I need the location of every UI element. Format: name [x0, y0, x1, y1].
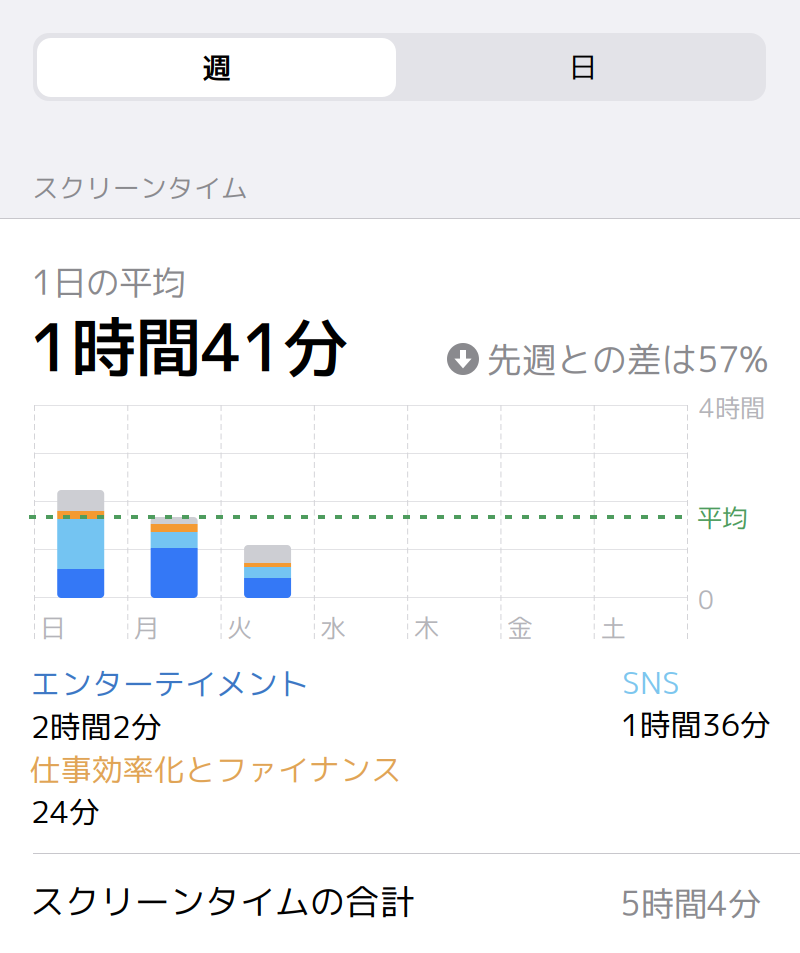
- staticText: 日: [40, 610, 65, 645]
- staticText: 先週との差は57%: [487, 335, 768, 383]
- staticText: 月: [133, 610, 158, 645]
- staticText: 0: [698, 582, 714, 617]
- staticText: 1時間36分: [621, 703, 771, 746]
- staticText: 火: [227, 610, 252, 645]
- staticText: 24分: [31, 790, 100, 833]
- button[interactable]: 日: [33, 33, 766, 101]
- staticText: 4時間: [699, 390, 765, 425]
- staticText: 週: [202, 47, 231, 88]
- staticText: 土: [601, 610, 626, 645]
- staticText: 金: [507, 610, 532, 645]
- staticText: SNS: [622, 661, 680, 704]
- staticText: 水: [320, 610, 345, 645]
- staticText: 仕事効率化とファイナンス: [30, 748, 402, 791]
- staticText: 平均: [697, 500, 747, 535]
- button[interactable]: スクリーンタイムの合計: [0, 853, 800, 953]
- staticText: スクリーンタイム: [32, 169, 248, 206]
- staticText: 2時間2分: [31, 705, 162, 748]
- staticText: 1日の平均: [32, 259, 185, 305]
- staticText: 5時間4分: [620, 880, 761, 926]
- staticText: 1時間41分: [30, 301, 348, 392]
- staticText: スクリーンタイムの合計: [30, 877, 415, 925]
- staticText: 日: [569, 47, 597, 87]
- staticText: 木: [414, 610, 439, 645]
- staticText: エンターテイメント: [30, 662, 309, 705]
